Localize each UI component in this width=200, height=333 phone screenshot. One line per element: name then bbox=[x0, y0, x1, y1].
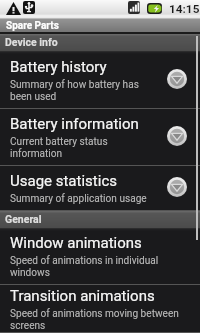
button[interactable]: Expand bbox=[167, 177, 187, 197]
staticText: Usage statistics bbox=[10, 172, 117, 190]
staticText: Transition animations bbox=[10, 287, 155, 305]
staticText: Speed of animations in individual window… bbox=[10, 255, 192, 278]
button[interactable]: Expand bbox=[167, 126, 187, 146]
button[interactable]: Usage statistics bbox=[0, 166, 200, 211]
button[interactable]: Transition animations bbox=[0, 285, 200, 333]
button[interactable]: Battery information bbox=[0, 109, 200, 166]
staticText: Summary of how battery has been used bbox=[10, 79, 154, 102]
staticText: General bbox=[5, 213, 42, 225]
staticText: Current battery status information bbox=[10, 136, 154, 159]
staticText: Spare Parts bbox=[6, 20, 59, 32]
staticText: Speed of animations moving between scree… bbox=[10, 308, 192, 331]
staticText: Battery history bbox=[10, 58, 107, 76]
button[interactable]: Battery history bbox=[0, 51, 200, 109]
button[interactable]: Expand bbox=[167, 69, 187, 89]
staticText: 14:15 bbox=[169, 2, 200, 16]
staticText: Summary of application usage bbox=[10, 193, 147, 205]
staticText: Device info bbox=[5, 36, 58, 48]
staticText: Window animations bbox=[10, 234, 142, 252]
staticText: Battery information bbox=[10, 115, 139, 133]
button[interactable]: Window animations bbox=[0, 228, 200, 285]
